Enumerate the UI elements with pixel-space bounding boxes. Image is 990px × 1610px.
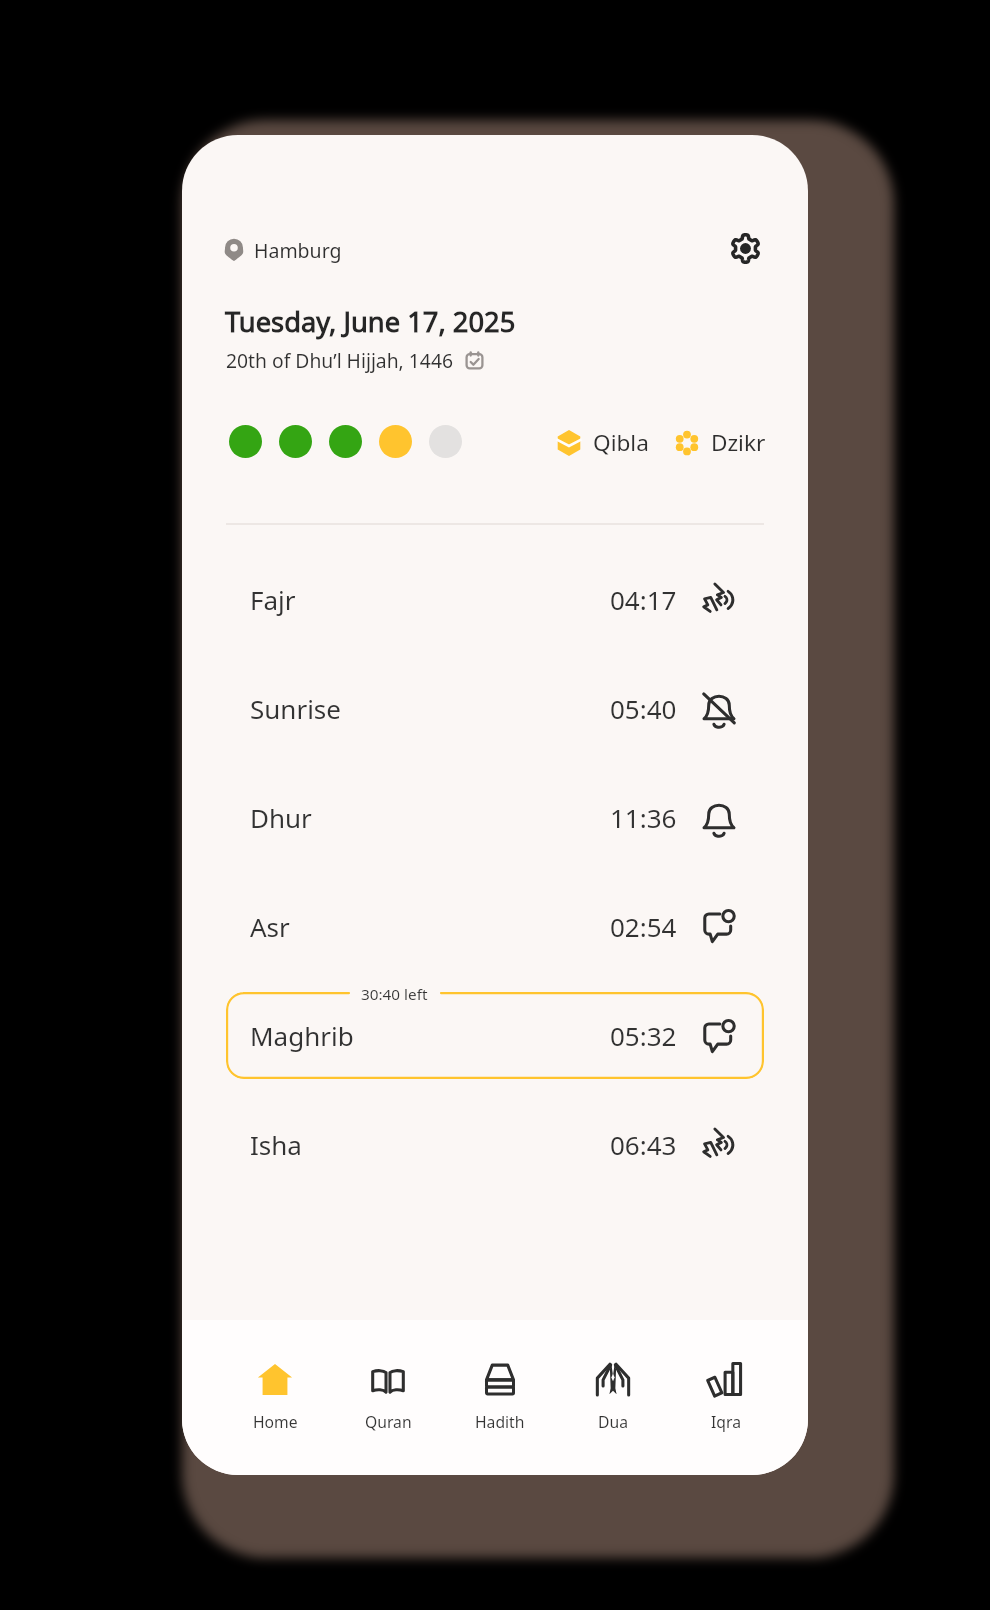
button[interactable]: Hadith	[448, 1361, 552, 1432]
staticText: Sunrise	[250, 691, 341, 726]
staticText: Asr	[250, 909, 290, 944]
staticText: 20th of Dhu’l Hijjah, 1446	[226, 347, 453, 373]
staticText: 05:32	[610, 1018, 677, 1053]
button[interactable]: Iqra	[674, 1361, 778, 1432]
button[interactable]: Home	[223, 1361, 327, 1432]
staticText: 11:36	[610, 800, 677, 835]
button[interactable]: Isha	[226, 1090, 764, 1198]
staticText: Dua	[598, 1411, 628, 1432]
button[interactable]: Fajr	[226, 545, 764, 653]
staticText: 05:40	[610, 691, 677, 726]
staticText: Quran	[365, 1411, 412, 1432]
staticText: Isha	[250, 1127, 302, 1162]
button[interactable]: Qibla	[550, 427, 653, 458]
staticText: Qibla	[593, 427, 649, 458]
button[interactable]: Dhur	[226, 763, 764, 871]
staticText: Hamburg	[254, 237, 342, 264]
staticText: Dzikr	[711, 427, 766, 458]
button[interactable]: Dzikr	[668, 427, 770, 458]
staticText: Home	[253, 1411, 298, 1432]
staticText: Fajr	[250, 582, 296, 617]
staticText: Dhur	[250, 800, 312, 835]
staticText: 02:54	[610, 909, 677, 944]
staticText: Iqra	[711, 1411, 741, 1432]
staticText: 30:40 left	[361, 984, 428, 1005]
button[interactable]: Quran	[336, 1361, 440, 1432]
button[interactable]: Settings	[723, 226, 767, 270]
staticText: Maghrib	[250, 1018, 354, 1053]
button[interactable]: Asr	[226, 872, 764, 980]
button[interactable]: Sunrise	[226, 654, 764, 762]
button[interactable]: Maghrib	[226, 992, 764, 1079]
staticText: Hadith	[475, 1411, 525, 1432]
button[interactable]: Dua	[561, 1361, 665, 1432]
staticText: Tuesday, June 17, 2025	[225, 303, 516, 340]
button[interactable]: Hamburg	[219, 228, 348, 272]
staticText: 06:43	[610, 1127, 677, 1162]
staticText: 04:17	[610, 582, 677, 617]
